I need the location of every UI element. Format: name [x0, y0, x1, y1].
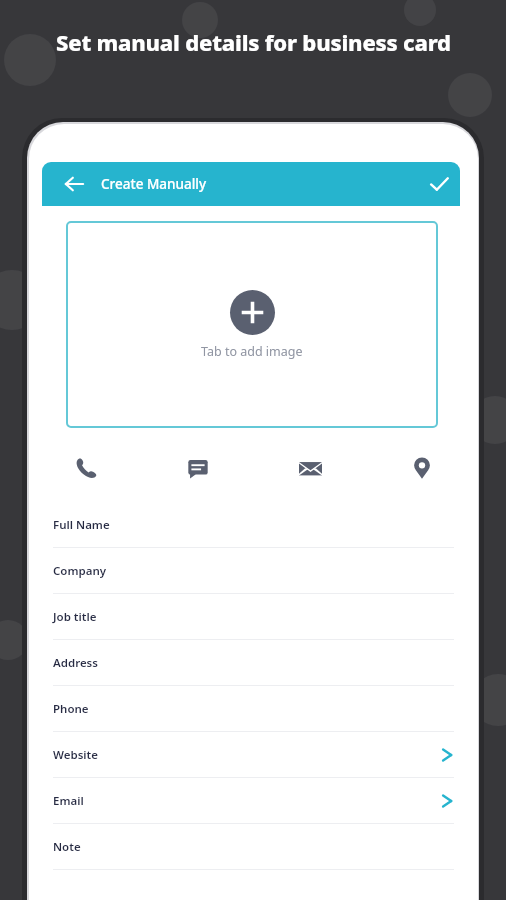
- staticText: Email: [53, 793, 84, 809]
- button[interactable]: Job title: [29, 594, 478, 639]
- staticText: Address: [53, 655, 98, 671]
- button[interactable]: Phone: [29, 686, 478, 731]
- staticText: Company: [53, 563, 107, 579]
- staticText: Website: [53, 747, 98, 763]
- button[interactable]: Email: [254, 446, 366, 490]
- button[interactable]: Call: [29, 446, 142, 490]
- staticText: Note: [53, 839, 81, 855]
- button[interactable]: Message: [142, 446, 254, 490]
- staticText: Set manual details for business card: [56, 27, 451, 57]
- staticText: Tab to add image: [201, 343, 303, 360]
- button[interactable]: Back: [52, 162, 96, 206]
- staticText: Phone: [53, 701, 89, 717]
- button[interactable]: Note: [29, 824, 478, 869]
- button[interactable]: Company: [29, 548, 478, 593]
- button[interactable]: Save: [418, 162, 460, 206]
- button[interactable]: Location: [366, 446, 478, 490]
- button[interactable]: Tab to add image: [66, 221, 438, 428]
- staticText: Job title: [53, 609, 97, 625]
- staticText: Create Manually: [101, 175, 207, 193]
- button[interactable]: Website: [29, 732, 478, 777]
- button[interactable]: Email: [29, 778, 478, 823]
- staticText: Full Name: [53, 517, 110, 533]
- button[interactable]: Address: [29, 640, 478, 685]
- button[interactable]: Full Name: [29, 502, 478, 547]
- button[interactable]: Back: [42, 162, 460, 206]
